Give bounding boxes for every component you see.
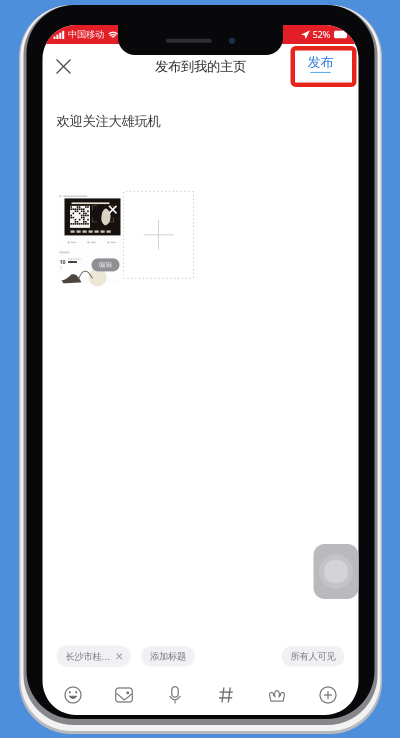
staticText: 长沙市桂... — [65, 650, 110, 662]
staticText: 添加标题 — [150, 651, 186, 662]
button[interactable]: 所有人可见 — [281, 646, 344, 667]
button[interactable]: AssistiveTouch — [313, 544, 358, 599]
button[interactable]: More — [302, 678, 353, 712]
staticText: 所有人可见 — [290, 651, 335, 662]
staticText: 10 — [59, 258, 65, 265]
staticText: 欢迎关注大雄玩机 — [56, 113, 160, 129]
staticText: 编辑 — [98, 261, 112, 269]
button[interactable]: Add photo — [123, 191, 193, 278]
button[interactable]: Topic — [200, 678, 251, 712]
button[interactable]: 添加标题 — [141, 646, 195, 667]
button[interactable]: Selected photo — [56, 191, 121, 282]
button[interactable]: Close — [48, 51, 78, 81]
staticText: 发布 — [307, 54, 333, 70]
staticText: 52% — [312, 28, 330, 41]
button[interactable]: Mention — [251, 678, 302, 712]
staticText: 中国移动 — [68, 29, 104, 40]
button[interactable]: 发布 — [290, 46, 356, 87]
staticText: 月 — [59, 266, 62, 269]
button[interactable]: 长沙市桂... — [56, 646, 131, 667]
button[interactable]: Photo — [98, 678, 149, 712]
button[interactable]: Emoji — [47, 678, 98, 712]
staticText: 发布到我的主页 — [155, 58, 246, 75]
button[interactable]: Voice — [149, 678, 200, 712]
